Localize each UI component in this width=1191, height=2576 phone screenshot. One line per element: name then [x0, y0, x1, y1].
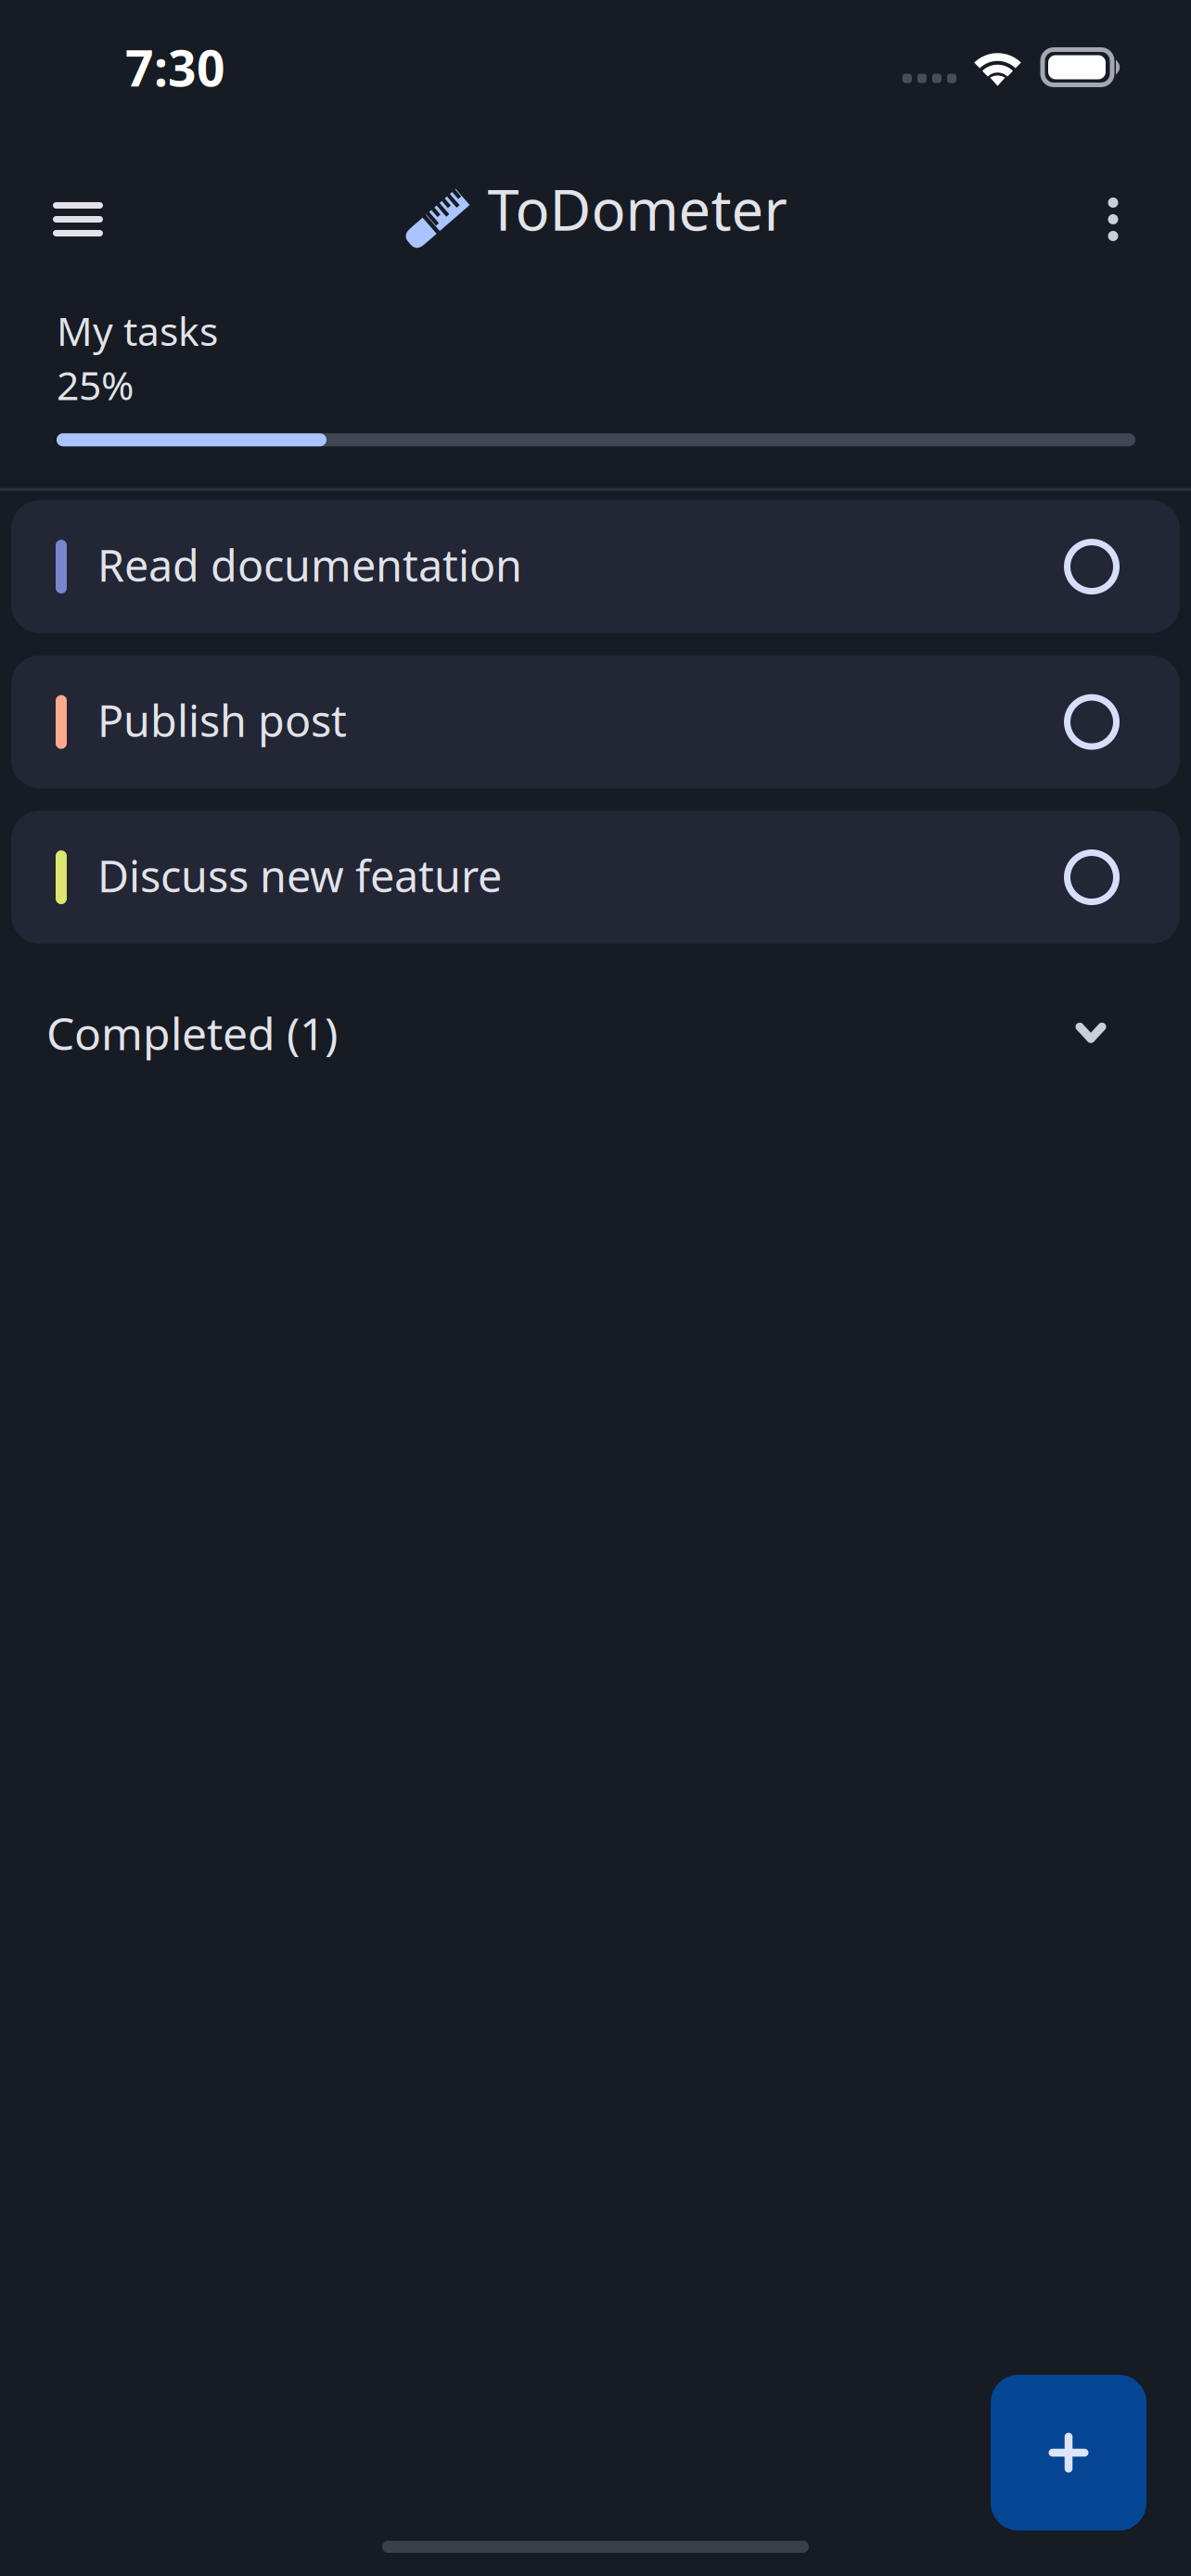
button[interactable]: Add task	[991, 2375, 1146, 2531]
staticText: 25%	[57, 359, 134, 411]
button[interactable]: Publish post	[11, 655, 1180, 788]
staticText: Completed (1)	[46, 1003, 338, 1062]
staticText: 7:30	[125, 34, 225, 100]
button[interactable]: Completed (1)	[0, 973, 1191, 1093]
button[interactable]: Read documentation	[11, 500, 1180, 633]
button[interactable]: More options	[1062, 134, 1164, 283]
button[interactable]: Menu	[27, 134, 129, 283]
staticText: Publish post	[97, 691, 347, 749]
staticText: Read documentation	[97, 536, 522, 594]
staticText: ToDometer	[487, 171, 787, 246]
staticText: My tasks	[57, 304, 218, 357]
staticText: Discuss new feature	[97, 847, 502, 904]
button[interactable]: Discuss new feature	[11, 811, 1180, 944]
